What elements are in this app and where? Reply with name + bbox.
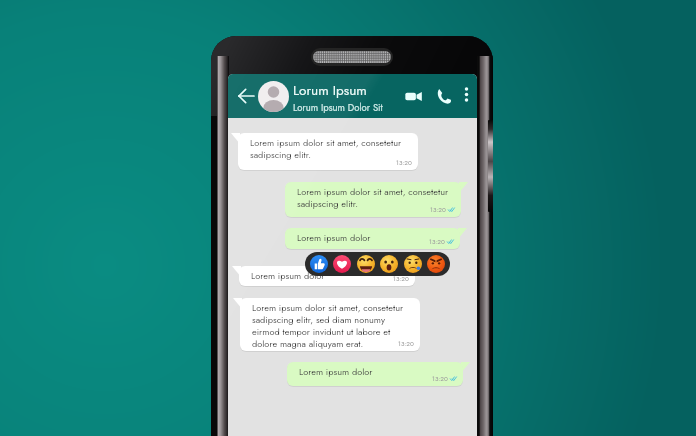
staticText: Lorem ipsum dolor sit amet, consetetur s… — [252, 301, 404, 350]
button[interactable]: Back — [234, 84, 257, 107]
staticText: 13:20 — [393, 274, 409, 283]
button[interactable]: Video call — [402, 85, 424, 107]
staticText: 13:20 — [429, 237, 445, 246]
button[interactable]: Lorem ipsum dolor sit amet, consetetur s… — [238, 133, 418, 170]
staticText: Lorem ipsum dolor — [299, 365, 373, 378]
staticText: 13:20 — [396, 158, 412, 167]
staticText: Lorum Ipsum — [293, 81, 367, 101]
button[interactable]: Call — [433, 85, 454, 106]
button[interactable]: Reactions — [305, 252, 450, 276]
button[interactable]: Lorem ipsum dolor — [287, 362, 463, 386]
button[interactable]: Lorem ipsum dolor sit amet, consetetur s… — [240, 298, 420, 351]
staticText: 13:20 — [398, 339, 414, 348]
staticText: Lorem ipsum dolor — [251, 269, 325, 282]
staticText: Lorem ipsum dolor sit amet, consetetur s… — [297, 185, 449, 210]
button[interactable]: More options — [457, 85, 475, 103]
staticText: Lorum Ipsum Dolor Sit — [293, 101, 383, 115]
staticText: 13:20 — [430, 205, 446, 214]
staticText: 13:20 — [432, 374, 448, 383]
staticText: Lorem ipsum dolor sit amet, consetetur s… — [250, 136, 402, 161]
staticText: Lorem ipsum dolor — [297, 231, 371, 244]
button[interactable]: Lorem ipsum dolor — [285, 228, 460, 249]
button[interactable]: Lorem ipsum dolor sit amet, consetetur s… — [285, 182, 461, 217]
button[interactable]: Lorem ipsum dolor — [239, 266, 415, 286]
